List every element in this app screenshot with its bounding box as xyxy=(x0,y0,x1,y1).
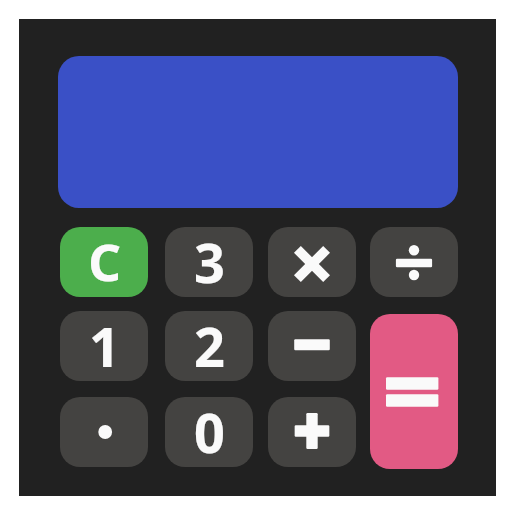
button[interactable]: Decimal point xyxy=(60,397,148,467)
staticText: 1 xyxy=(89,311,120,379)
button[interactable]: Plus xyxy=(268,397,356,467)
button[interactable]: Multiply xyxy=(268,227,356,297)
staticText: 3 xyxy=(194,227,225,295)
button[interactable]: Divide xyxy=(370,227,458,297)
button[interactable]: Equals xyxy=(370,314,458,469)
button[interactable]: Zero xyxy=(165,397,253,467)
button[interactable]: Clear xyxy=(60,227,148,297)
button[interactable]: Two xyxy=(165,311,253,381)
button[interactable]: Result display xyxy=(58,56,458,208)
staticText: 2 xyxy=(194,311,225,379)
button[interactable]: One xyxy=(60,311,148,381)
staticText: C xyxy=(88,227,121,295)
staticText: 0 xyxy=(194,397,225,465)
button[interactable]: Minus xyxy=(268,311,356,381)
button[interactable]: Three xyxy=(165,227,253,297)
